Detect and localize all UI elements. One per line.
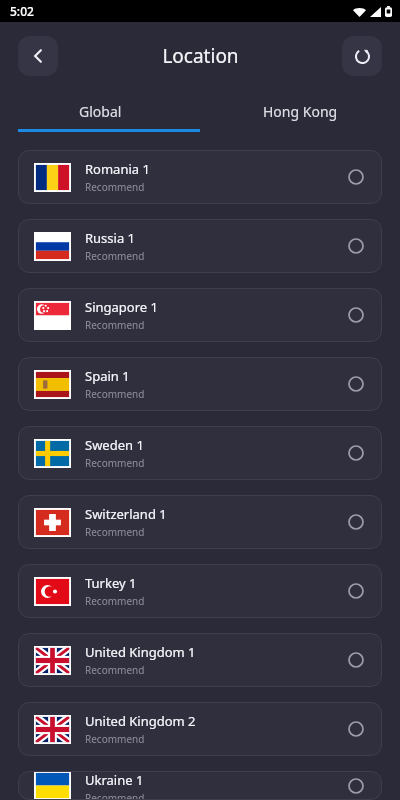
staticText: Recommend	[85, 791, 145, 800]
staticText: Singapore 1	[85, 298, 158, 316]
button[interactable]: Refresh	[342, 36, 382, 76]
button[interactable]: Romania 1	[18, 150, 382, 204]
staticText: United Kingdom 1	[85, 643, 196, 661]
button[interactable]: Back	[18, 36, 58, 76]
staticText: Recommend	[85, 387, 145, 401]
button[interactable]: Global	[0, 90, 200, 132]
staticText: Switzerland 1	[85, 505, 167, 523]
staticText: Recommend	[85, 594, 145, 608]
staticText: Recommend	[85, 249, 145, 263]
staticText: Recommend	[85, 732, 145, 746]
button[interactable]: Turkey 1	[18, 564, 382, 618]
staticText: Recommend	[85, 525, 145, 539]
staticText: United Kingdom 2	[85, 712, 196, 730]
staticText: Romania 1	[85, 160, 150, 178]
staticText: Ukraine 1	[85, 771, 144, 789]
button[interactable]: Russia 1	[18, 219, 382, 273]
button[interactable]: Hong Kong	[200, 90, 400, 132]
button[interactable]: Ukraine 1	[18, 771, 382, 800]
button[interactable]: United Kingdom 2	[18, 702, 382, 756]
staticText: Spain 1	[85, 367, 130, 385]
staticText: Recommend	[85, 180, 145, 194]
button[interactable]: United Kingdom 1	[18, 633, 382, 687]
staticText: Russia 1	[85, 229, 136, 247]
staticText: Recommend	[85, 318, 145, 332]
button[interactable]: Sweden 1	[18, 426, 382, 480]
staticText: Sweden 1	[85, 436, 144, 454]
button[interactable]: Singapore 1	[18, 288, 382, 342]
staticText: Global	[79, 102, 122, 121]
button[interactable]: Spain 1	[18, 357, 382, 411]
staticText: Hong Kong	[263, 102, 338, 121]
staticText: 5:02	[10, 3, 34, 19]
button[interactable]: Switzerland 1	[18, 495, 382, 549]
staticText: Recommend	[85, 456, 145, 470]
staticText: Recommend	[85, 663, 145, 677]
staticText: Location	[162, 43, 239, 69]
staticText: Turkey 1	[85, 574, 137, 592]
